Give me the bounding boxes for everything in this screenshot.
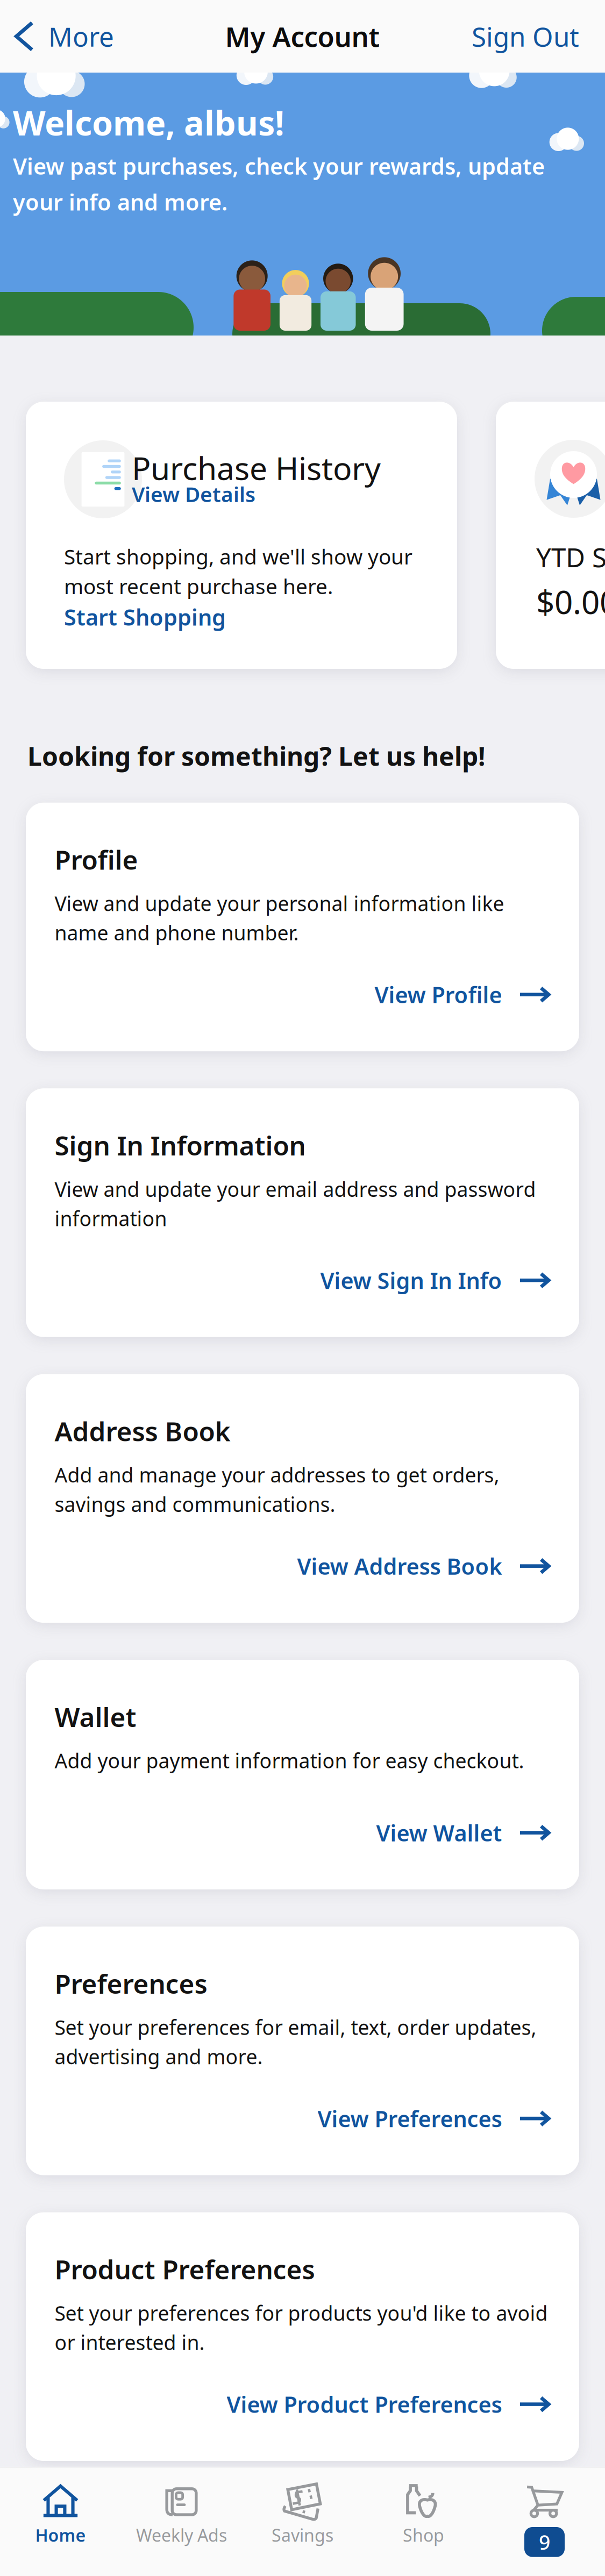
staticText: YTD Savings	[536, 539, 605, 575]
button[interactable]: Wallet	[26, 1660, 579, 1889]
staticText: View Address Book	[297, 1551, 502, 1581]
staticText: Set your preferences for products you'd …	[55, 2300, 548, 2356]
button[interactable]: Shop	[363, 2478, 484, 2546]
button[interactable]: Weekly Ads	[121, 2478, 242, 2546]
staticText: Start Shopping	[64, 602, 226, 632]
staticText: Preferences	[55, 1966, 207, 2001]
staticText: Looking for something? Let us help!	[27, 739, 486, 773]
staticText: $0.00	[536, 580, 605, 623]
staticText: View Wallet	[376, 1818, 502, 1848]
button[interactable]: Sign Out	[472, 9, 605, 64]
button[interactable]: Address Book	[26, 1374, 579, 1623]
staticText: 9	[539, 2529, 550, 2555]
button[interactable]: YTD Savings	[496, 402, 605, 669]
staticText: Set your preferences for email, text, or…	[55, 2014, 536, 2070]
staticText: View and update your personal informatio…	[55, 890, 504, 946]
staticText: View and update your email address and p…	[55, 1176, 536, 1232]
staticText: Wallet	[55, 1699, 136, 1734]
staticText: Purchase History	[132, 447, 381, 489]
staticText: View Product Preferences	[227, 2389, 502, 2419]
staticText: Profile	[55, 842, 138, 877]
button[interactable]: Profile	[26, 803, 579, 1051]
staticText: View Profile	[375, 980, 502, 1009]
staticText: View Preferences	[318, 2104, 502, 2133]
button[interactable]: 9	[484, 2467, 605, 2557]
staticText: View Details	[132, 480, 255, 508]
button[interactable]: Savings	[242, 2478, 363, 2546]
staticText: Start shopping, and we'll show your most…	[64, 543, 412, 600]
button[interactable]: Preferences	[26, 1927, 579, 2175]
staticText: Shop	[403, 2524, 444, 2546]
button[interactable]: Purchase History	[26, 402, 457, 669]
staticText: Address Book	[55, 1413, 230, 1448]
staticText: Welcome, albus!	[13, 100, 284, 145]
staticText: My Account	[225, 18, 380, 54]
button[interactable]: Product Preferences	[26, 2212, 579, 2461]
button[interactable]: Home	[0, 2478, 121, 2546]
button[interactable]: More	[0, 9, 114, 64]
staticText: Sign In Information	[55, 1128, 306, 1163]
staticText: Add your payment information for easy ch…	[55, 1747, 524, 1774]
staticText: View Sign In Info	[320, 1266, 502, 1295]
staticText: Savings	[272, 2524, 333, 2546]
staticText: Sign Out	[472, 19, 579, 54]
staticText: View past purchases, check your rewards,…	[13, 151, 545, 217]
staticText: Home	[35, 2524, 86, 2546]
staticText: Product Preferences	[55, 2252, 315, 2287]
button[interactable]: Sign In Information	[26, 1088, 579, 1337]
staticText: Add and manage your addresses to get ord…	[55, 1461, 499, 1517]
staticText: Weekly Ads	[136, 2524, 227, 2546]
staticText: More	[48, 19, 114, 54]
